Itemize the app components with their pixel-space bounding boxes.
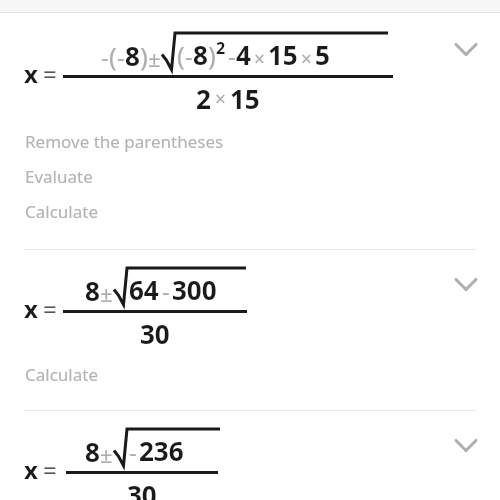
staticText: Calculate (25, 200, 500, 223)
staticText: 5 (315, 37, 330, 72)
staticText: - (117, 40, 125, 73)
staticText: 8 (193, 37, 208, 72)
staticText: × (301, 46, 312, 72)
staticText: ( (177, 37, 185, 72)
staticText: - (129, 435, 137, 468)
staticText: - (162, 274, 170, 307)
staticText: = (43, 57, 57, 90)
staticText: 236 (139, 433, 184, 468)
staticText: ( (109, 38, 117, 73)
staticText: - (101, 40, 109, 73)
staticText: x (24, 57, 38, 90)
staticText: × (254, 46, 265, 72)
button[interactable]: Expand step (444, 27, 488, 71)
staticText: ) (208, 37, 216, 72)
staticText: ± (100, 439, 113, 469)
staticText: - (228, 39, 236, 72)
staticText: Evaluate (25, 165, 500, 188)
staticText: 4 (236, 37, 251, 72)
staticText: x (24, 453, 38, 486)
staticText: Remove the parentheses (25, 130, 500, 153)
staticText: 30 (127, 477, 157, 500)
staticText: ) (140, 38, 148, 73)
button[interactable]: x (0, 13, 500, 116)
staticText: 300 (172, 272, 217, 307)
staticText: 15 (268, 37, 298, 72)
staticText: 8 (125, 38, 140, 73)
button[interactable]: Expand step (444, 423, 488, 467)
staticText: Calculate (25, 363, 500, 386)
staticText: x (24, 292, 38, 325)
staticText: 30 (140, 316, 170, 351)
staticText: × (215, 86, 226, 112)
staticText: 2 (216, 37, 226, 59)
staticText: = (43, 292, 57, 325)
staticText: 8 (85, 273, 100, 308)
staticText: 8 (85, 434, 100, 469)
staticText: = (43, 453, 57, 486)
staticText: ± (100, 278, 113, 308)
staticText: 64 (129, 272, 159, 307)
staticText: - (185, 39, 193, 72)
staticText: 2 (196, 81, 211, 116)
button[interactable]: Expand step (444, 262, 488, 306)
button[interactable]: x (0, 250, 500, 351)
staticText: 15 (230, 81, 260, 116)
staticText: ± (148, 43, 161, 73)
button[interactable]: x (0, 411, 500, 500)
